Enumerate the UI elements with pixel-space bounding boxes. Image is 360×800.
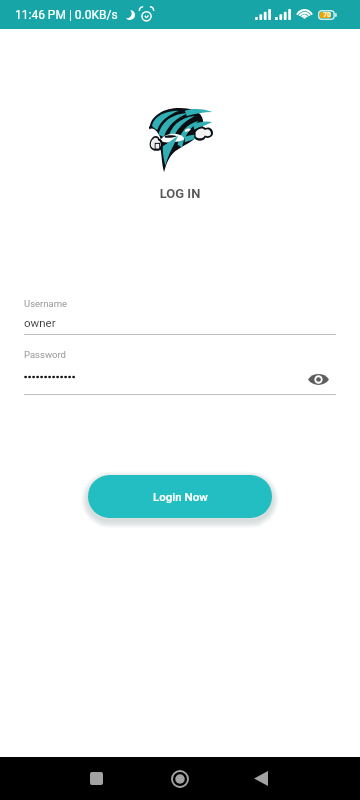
button[interactable]: Show password <box>306 367 331 392</box>
button[interactable]: Login Now <box>88 475 272 518</box>
button[interactable]: Home <box>159 757 200 800</box>
staticText: LOG IN <box>0 186 360 201</box>
staticText: Username <box>24 298 68 309</box>
staticText: Login Now <box>153 490 208 503</box>
staticText: owner <box>24 316 56 329</box>
staticText: 11:46 PM | 0.0KB/s <box>15 8 118 22</box>
staticText: Password <box>24 349 66 360</box>
button[interactable]: Recents <box>76 757 117 800</box>
staticText: 70 <box>323 11 332 19</box>
button[interactable]: Back <box>240 757 281 800</box>
